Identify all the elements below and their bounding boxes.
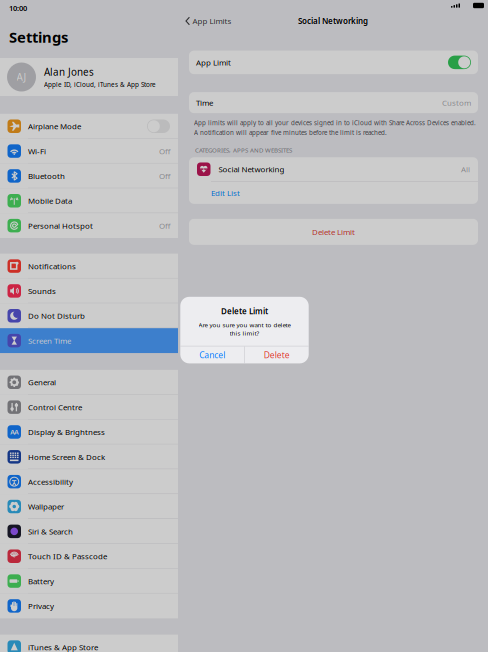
staticText: Apple ID, iCloud, iTunes & App Store (44, 80, 156, 89)
staticText: Off (159, 171, 170, 181)
staticText: Notifications (28, 261, 76, 271)
staticText: Alan Jones (44, 65, 94, 79)
staticText: App Limit (196, 57, 231, 68)
button[interactable]: Home Screen & Dock (0, 444, 178, 469)
staticText: Battery (28, 576, 54, 586)
button[interactable]: Delete (245, 346, 309, 363)
staticText: A notification will appear five minutes … (194, 128, 387, 137)
staticText: Touch ID & Passcode (28, 551, 107, 562)
staticText: Delete Limit (312, 226, 355, 237)
staticText: Time (196, 97, 213, 108)
staticText: Accessibility (28, 476, 73, 487)
button[interactable]: Delete Limit (178, 204, 488, 245)
button[interactable]: Control Centre (0, 395, 178, 420)
staticText: AA (10, 427, 18, 436)
button[interactable]: Social Networking (189, 157, 478, 181)
button[interactable]: Accessibility (0, 469, 178, 494)
staticText: Off (159, 220, 170, 231)
staticText: Bluetooth (28, 171, 65, 181)
button[interactable]: Time (178, 74, 488, 113)
staticText: Wi-Fi (28, 146, 46, 156)
button[interactable]: Edit List (189, 182, 478, 204)
staticText: 10:00 (9, 3, 27, 13)
staticText: Home Screen & Dock (28, 451, 105, 462)
button[interactable]: Sounds (0, 278, 178, 303)
button[interactable]: Touch ID & Passcode (0, 544, 178, 569)
staticText: Sounds (28, 286, 56, 296)
staticText: All (461, 164, 470, 175)
button[interactable]: Mobile Data (0, 188, 178, 213)
button[interactable]: Privacy (0, 593, 178, 618)
staticText: Control Centre (28, 402, 82, 412)
staticText: CATEGORIES, APPS AND WEBSITES (195, 146, 292, 154)
staticText: Siri & Search (28, 526, 73, 537)
staticText: Wallpaper (28, 501, 64, 512)
staticText: App Limits (192, 16, 231, 26)
staticText: Are you sure you want to delete (198, 321, 290, 329)
staticText: Edit List (211, 187, 240, 198)
staticText: Personal Hotspot (28, 220, 93, 231)
button[interactable]: AA (0, 420, 178, 444)
button[interactable]: Siri & Search (0, 519, 178, 544)
staticText: Screen Time (28, 335, 71, 346)
staticText: Display & Brightness (28, 427, 105, 437)
staticText: Cancel (199, 349, 225, 361)
staticText: General (28, 377, 56, 388)
button[interactable]: Screen Time (0, 328, 178, 353)
staticText: this limit? (229, 329, 259, 337)
staticText: Delete Limit (221, 306, 268, 317)
button[interactable]: Personal Hotspot (0, 213, 178, 238)
staticText: iTunes & App Store (28, 642, 98, 652)
staticText: Custom (442, 97, 471, 108)
button[interactable]: Wallpaper (0, 494, 178, 519)
button[interactable]: General (0, 370, 178, 395)
button[interactable]: Bluetooth (0, 163, 178, 188)
button[interactable]: Battery (0, 569, 178, 593)
staticText: Do Not Disturb (28, 310, 85, 321)
button[interactable]: AJ (0, 58, 178, 96)
staticText: Settings (9, 27, 68, 47)
staticText: Airplane Mode (28, 121, 81, 132)
staticText: App limits will apply to all your device… (194, 119, 476, 127)
staticText: Mobile Data (28, 195, 72, 206)
staticText: AJ (16, 70, 26, 84)
button[interactable]: Airplane Mode (0, 114, 178, 139)
button[interactable]: Cancel (180, 346, 244, 363)
staticText: Social Networking (298, 16, 368, 26)
staticText: Delete (264, 349, 290, 361)
staticText: Social Networking (218, 164, 284, 175)
button[interactable]: Do Not Disturb (0, 303, 178, 328)
button[interactable]: Notifications (0, 254, 178, 279)
staticText: Off (159, 146, 170, 156)
staticText: Privacy (28, 601, 54, 611)
button[interactable]: iTunes & App Store (0, 635, 178, 652)
button[interactable]: Wi-Fi (0, 139, 178, 164)
button[interactable]: App Limits (178, 11, 237, 31)
